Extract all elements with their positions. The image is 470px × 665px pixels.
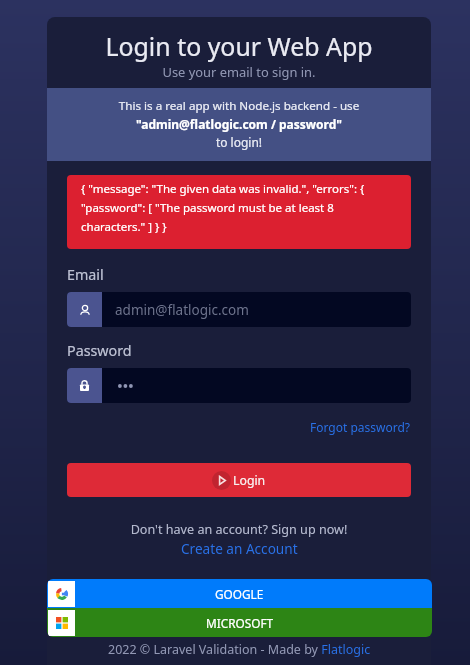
staticText: GOOGLE bbox=[215, 586, 264, 602]
staticText: Use your email to sign in. bbox=[47, 63, 431, 81]
staticText: 2022 © Laravel Validation - Made by Flat… bbox=[108, 641, 371, 658]
other: Email bbox=[67, 292, 102, 327]
staticText: { "message": "The given data was invalid… bbox=[81, 181, 365, 197]
staticText: characters." ] } } bbox=[81, 219, 167, 235]
staticText: "password": [ "The password must be at l… bbox=[81, 200, 334, 216]
button[interactable]: Create an Account bbox=[181, 539, 298, 558]
button[interactable]: Login bbox=[67, 463, 411, 497]
staticText: Login bbox=[233, 472, 266, 489]
staticText: "admin@flatlogic.com / password" bbox=[47, 116, 431, 132]
staticText: This is a real app with Node.js backend … bbox=[47, 98, 431, 114]
staticText: Email bbox=[67, 265, 104, 284]
button[interactable]: MICROSOFT bbox=[47, 608, 432, 637]
staticText: MICROSOFT bbox=[206, 615, 274, 631]
staticText: Don't have an account? Sign up now! bbox=[47, 521, 431, 538]
staticText: to login! bbox=[47, 134, 431, 150]
staticText: admin@flatlogic.com bbox=[115, 301, 249, 319]
staticText: Password bbox=[67, 341, 132, 360]
button[interactable]: Forgot password? bbox=[310, 419, 411, 435]
staticText: Create an Account bbox=[181, 539, 298, 558]
staticText: Login to your Web App bbox=[47, 29, 431, 63]
button[interactable]: Email bbox=[67, 292, 411, 327]
button[interactable]: GOOGLE bbox=[47, 579, 432, 608]
staticText: Forgot password? bbox=[310, 419, 411, 435]
other: Password bbox=[67, 368, 102, 403]
button[interactable]: Password bbox=[67, 368, 411, 403]
